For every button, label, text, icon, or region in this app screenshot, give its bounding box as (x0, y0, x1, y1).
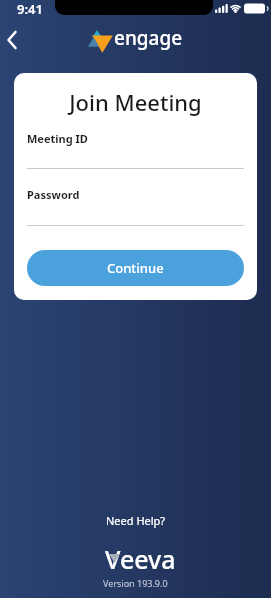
button[interactable] (0, 24, 28, 52)
button[interactable]: Need Help? (106, 513, 166, 528)
button[interactable]: Continue (27, 250, 244, 286)
staticText: 9:41 (17, 0, 43, 15)
staticText: Password (27, 187, 80, 202)
staticText: Version 193.9.0 (103, 577, 168, 589)
button[interactable]: Meeting ID (27, 131, 244, 169)
staticText: Meeting ID (27, 131, 88, 146)
staticText: Veeva (105, 542, 176, 576)
staticText: Continue (107, 259, 164, 277)
staticText: Join Meeting (27, 87, 244, 117)
staticText: engage (114, 25, 183, 51)
button[interactable]: Password (27, 187, 244, 226)
